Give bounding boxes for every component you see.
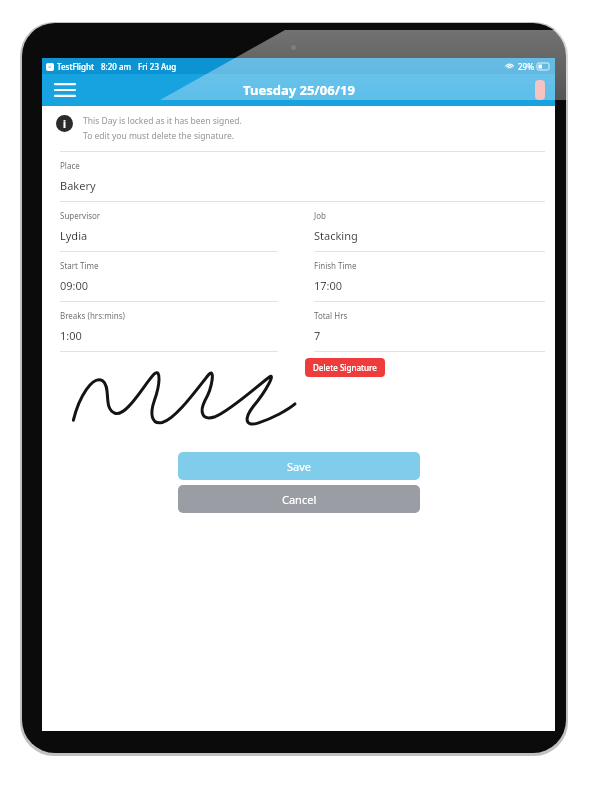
staticText: Supervisor [60,210,101,221]
staticText: 8:20 am [101,61,132,72]
staticText: 17:00 [314,278,343,293]
button[interactable]: Finish Time [288,252,555,302]
button[interactable]: Start Time [42,252,288,302]
staticText: Job [314,210,326,221]
button[interactable]: Delete Signature [305,358,385,377]
staticText: 29% [518,61,534,72]
staticText: 09:00 [60,278,89,293]
staticText: Place [60,160,80,171]
button[interactable]: Save [178,452,420,480]
staticText: 1:00 [60,328,82,343]
staticText: Finish Time [314,260,357,271]
staticText: Fri 23 Aug [138,61,177,72]
staticText: Cancel [282,492,317,507]
staticText: Total Hrs [314,310,348,321]
staticText: 7 [314,328,321,343]
button[interactable]: Cancel [178,485,420,513]
staticText: Delete Signature [313,362,377,373]
staticText: To edit you must delete the signature. [83,130,235,142]
staticText: Start Time [60,260,99,271]
staticText: < [48,63,52,71]
staticText: Breaks (hrs:mins) [60,310,125,321]
staticText: Tuesday 25/06/19 [243,81,355,99]
button[interactable]: Place [42,152,555,202]
button[interactable]: Breaks (hrs:mins) [42,302,288,352]
staticText: Save [287,459,312,474]
staticText: Bakery [60,178,96,193]
button[interactable]: Open navigation menu [50,75,80,105]
button[interactable]: Job [288,202,555,252]
button[interactable]: Status indicator [535,80,545,100]
staticText: TestFlight [57,61,95,72]
staticText: This Day is locked as it has been signed… [83,115,242,127]
button[interactable]: Total Hrs [288,302,555,352]
staticText: i [63,117,66,131]
staticText: Stacking [314,228,358,243]
button[interactable]: Supervisor [42,202,288,252]
staticText: Lydia [60,228,88,243]
